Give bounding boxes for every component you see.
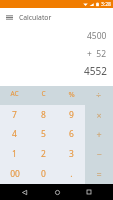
staticText: 6 xyxy=(69,128,74,140)
button[interactable]: 00 xyxy=(0,164,29,184)
button[interactable]: Divide xyxy=(85,86,113,105)
staticText: . xyxy=(70,168,73,180)
staticText: 0 xyxy=(41,168,46,180)
button[interactable]: 0 xyxy=(29,164,57,184)
staticText: + 52 xyxy=(87,48,107,60)
staticText: AC xyxy=(10,89,19,98)
button[interactable]: Back xyxy=(16,184,32,200)
staticText: 4500 xyxy=(87,30,107,42)
button[interactable]: Multiply xyxy=(85,105,113,124)
staticText: × xyxy=(96,109,102,121)
staticText: = xyxy=(96,168,102,180)
staticText: Calculator xyxy=(19,13,52,22)
staticText: 3:28 xyxy=(101,1,111,8)
staticText: 3 xyxy=(69,148,74,160)
staticText: 7 xyxy=(12,109,17,121)
button[interactable]: AC xyxy=(0,86,29,105)
staticText: 4 xyxy=(12,128,17,140)
button[interactable]: 1 xyxy=(0,144,29,164)
staticText: 8 xyxy=(41,109,46,121)
button[interactable]: C xyxy=(29,86,57,105)
staticText: 1 xyxy=(12,148,17,160)
staticText: − xyxy=(96,148,102,160)
staticText: 2 xyxy=(41,148,46,160)
button[interactable]: Recent apps xyxy=(81,184,97,200)
button[interactable]: % xyxy=(57,86,85,105)
button[interactable]: Equals xyxy=(85,164,113,184)
button[interactable]: 4 xyxy=(0,124,29,144)
button[interactable]: 8 xyxy=(29,105,57,124)
button[interactable]: 2 xyxy=(29,144,57,164)
staticText: 5 xyxy=(41,128,46,140)
button[interactable]: Subtract xyxy=(85,144,113,164)
staticText: 9 xyxy=(69,109,74,121)
button[interactable]: 3 xyxy=(57,144,85,164)
button[interactable]: Home xyxy=(49,184,65,200)
button[interactable]: 6 xyxy=(57,124,85,144)
button[interactable]: 7 xyxy=(0,105,29,124)
staticText: ÷ xyxy=(96,88,102,100)
staticText: % xyxy=(68,89,75,99)
staticText: 4552 xyxy=(84,64,107,78)
staticText: + xyxy=(96,128,102,140)
button[interactable]: Open navigation menu xyxy=(0,8,18,26)
button[interactable]: Add xyxy=(85,124,113,144)
staticText: C xyxy=(41,89,46,98)
button[interactable]: 9 xyxy=(57,105,85,124)
button[interactable]: . xyxy=(57,164,85,184)
button[interactable]: 5 xyxy=(29,124,57,144)
staticText: 00 xyxy=(10,168,20,180)
